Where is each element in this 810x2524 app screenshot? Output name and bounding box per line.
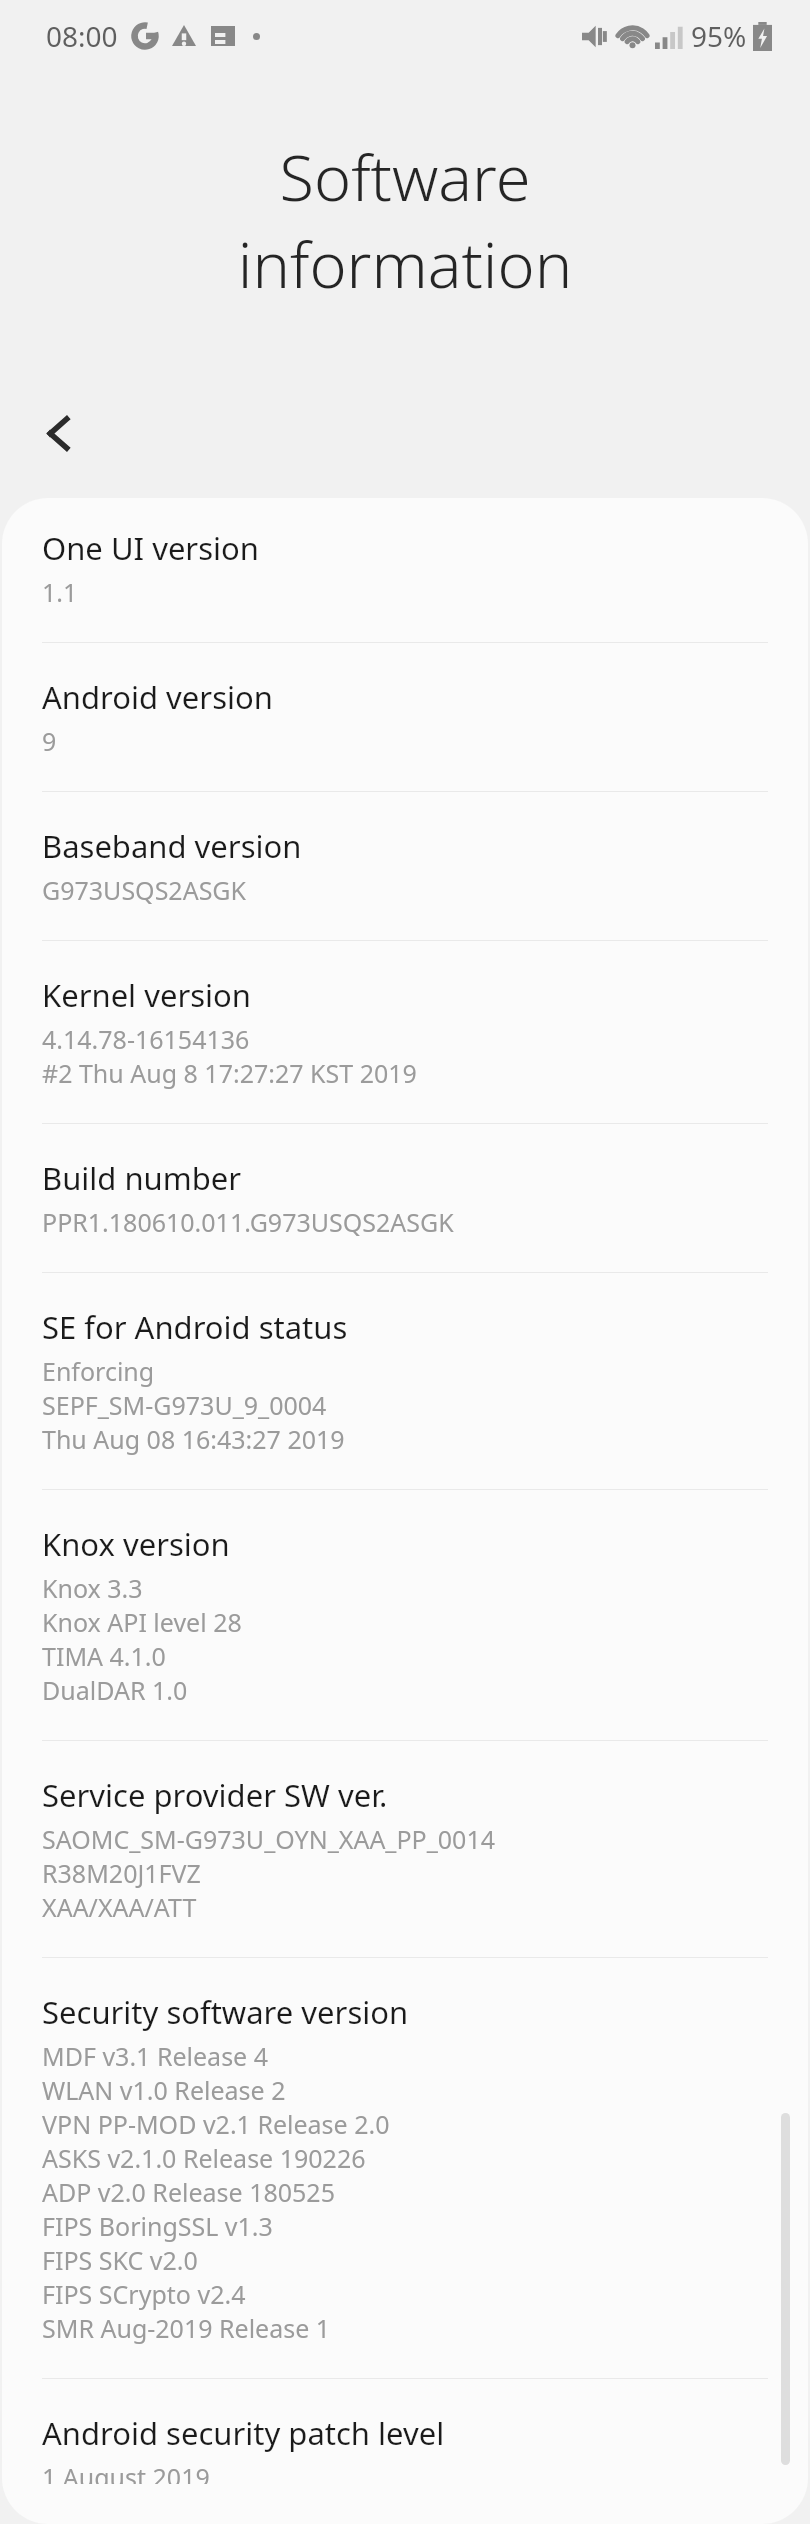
staticText: Kernel version — [42, 974, 251, 1016]
staticText: VPN PP-MOD v2.1 Release 2.0 — [42, 2107, 390, 2141]
staticText: Android version — [42, 676, 273, 718]
staticText: FIPS SKC v2.0 — [42, 2243, 198, 2277]
staticText: WLAN v1.0 Release 2 — [42, 2073, 286, 2107]
staticText: Knox API level 28 — [42, 1605, 242, 1639]
staticText: G973USQS2ASGK — [42, 873, 247, 907]
staticText: Baseband version — [42, 825, 302, 867]
staticText: SMR Aug-2019 Release 1 — [42, 2311, 331, 2345]
staticText: ADP v2.0 Release 180525 — [42, 2175, 335, 2209]
button[interactable]: Knox version — [2, 1490, 808, 1741]
staticText: 1.1 — [42, 575, 78, 609]
button[interactable]: Build number — [2, 1124, 808, 1273]
staticText: R38M20J1FVZ — [42, 1856, 201, 1890]
button[interactable]: Kernel version — [2, 941, 808, 1124]
staticText: XAA/XAA/ATT — [42, 1890, 197, 1924]
staticText: 4.14.78-16154136 — [42, 1022, 250, 1056]
button[interactable]: Back — [18, 392, 100, 474]
staticText: SE for Android status — [42, 1306, 348, 1348]
button[interactable]: Android version — [2, 643, 808, 792]
button[interactable]: Baseband version — [2, 792, 808, 941]
staticText: PPR1.180610.011.G973USQS2ASGK — [42, 1205, 454, 1239]
staticText: 95% — [691, 17, 747, 55]
button[interactable]: SE for Android status — [2, 1273, 808, 1490]
staticText: ASKS v2.1.0 Release 190226 — [42, 2141, 366, 2175]
staticText: #2 Thu Aug 8 17:27:27 KST 2019 — [42, 1056, 417, 1090]
staticText: SAOMC_SM-G973U_OYN_XAA_PP_0014 — [42, 1822, 496, 1856]
staticText: MDF v3.1 Release 4 — [42, 2039, 269, 2073]
staticText: FIPS SCrypto v2.4 — [42, 2277, 246, 2311]
staticText: Knox 3.3 — [42, 1571, 143, 1605]
staticText: Thu Aug 08 16:43:27 2019 — [42, 1422, 345, 1456]
staticText: One UI version — [42, 527, 259, 569]
staticText: 08:00 — [46, 17, 118, 55]
staticText: Security software version — [42, 1991, 409, 2033]
button[interactable]: Security software version — [2, 1958, 808, 2379]
staticText: Service provider SW ver. — [42, 1774, 388, 1816]
staticText: Software information — [56, 134, 754, 307]
staticText: FIPS BoringSSL v1.3 — [42, 2209, 273, 2243]
staticText: 9 — [42, 724, 57, 758]
button[interactable]: One UI version — [2, 498, 808, 643]
staticText: 1 August 2019 — [42, 2460, 210, 2484]
staticText: Enforcing — [42, 1354, 155, 1388]
staticText: DualDAR 1.0 — [42, 1673, 188, 1707]
staticText: Knox version — [42, 1523, 230, 1565]
button[interactable]: Service provider SW ver. — [2, 1741, 808, 1958]
staticText: Android security patch level — [42, 2412, 445, 2454]
staticText: Build number — [42, 1157, 242, 1199]
staticText: SEPF_SM-G973U_9_0004 — [42, 1388, 327, 1422]
staticText: TIMA 4.1.0 — [42, 1639, 166, 1673]
button[interactable]: Android security patch level — [2, 2379, 808, 2524]
